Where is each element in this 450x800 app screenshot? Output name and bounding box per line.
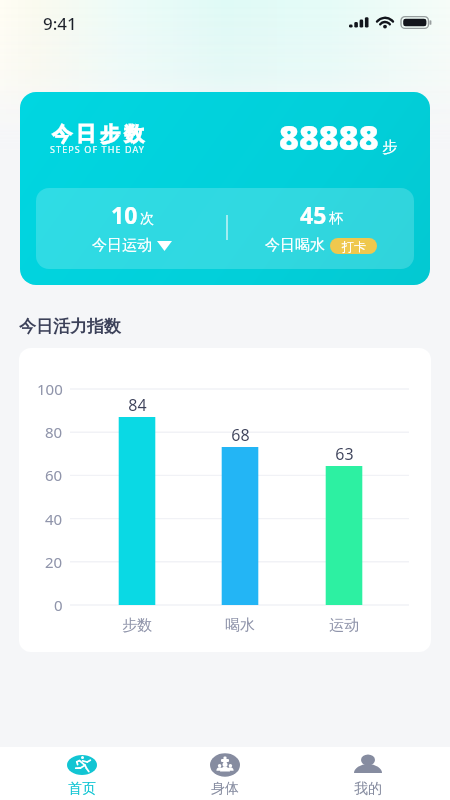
staticText: 运动 [329, 616, 359, 635]
staticText: 今日步数 [50, 122, 146, 147]
staticText: 我的 [354, 780, 382, 798]
staticText: 63 [335, 443, 354, 465]
staticText: 88888 [279, 114, 379, 160]
staticText: 今日运动 [92, 236, 152, 255]
staticText: 80 [45, 422, 63, 442]
staticText: 首页 [68, 780, 96, 798]
staticText: 今日喝水 [265, 236, 325, 255]
staticText: 9:41 [43, 12, 77, 35]
button[interactable]: 首页 [11, 747, 153, 800]
staticText: 步数 [122, 616, 152, 635]
staticText: 步 [382, 138, 397, 157]
button[interactable]: 身体 [153, 747, 296, 800]
button[interactable]: 我的 [296, 747, 439, 800]
staticText: 84 [128, 394, 147, 416]
staticText: 60 [45, 465, 63, 485]
staticText: 68 [231, 424, 250, 446]
staticText: 喝水 [225, 616, 255, 635]
staticText: 打卡 [342, 239, 366, 254]
button[interactable]: 打卡 [330, 238, 377, 254]
staticText: 20 [45, 552, 63, 572]
staticText: STEPS OF THE DAY [50, 143, 146, 155]
staticText: 100 [37, 379, 63, 399]
button[interactable]: 10 [42, 199, 222, 255]
staticText: 身体 [211, 780, 239, 798]
button[interactable]: 45 [231, 199, 411, 255]
staticText: 40 [45, 509, 63, 529]
staticText: 10 [111, 199, 138, 230]
staticText: 今日活力指数 [19, 316, 121, 337]
staticText: 次 [140, 210, 154, 228]
staticText: 45 [300, 199, 327, 230]
button[interactable]: 今日步数 [20, 92, 430, 285]
staticText: 杯 [329, 210, 343, 228]
staticText: 0 [54, 595, 63, 615]
